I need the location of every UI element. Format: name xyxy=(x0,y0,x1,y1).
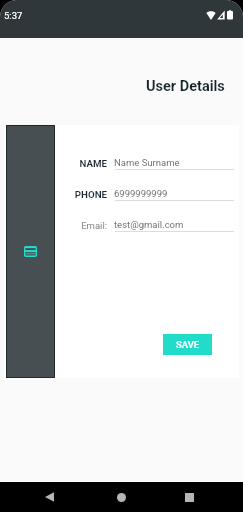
staticText: Name Surname xyxy=(114,157,180,168)
staticText: User Details xyxy=(146,78,225,95)
button[interactable]: Recent apps xyxy=(169,482,209,512)
staticText: 5:37 xyxy=(4,10,23,21)
staticText: PHONE xyxy=(47,189,107,200)
staticText: test@gmail.com xyxy=(114,219,184,230)
button[interactable]: Home xyxy=(101,482,142,512)
staticText: 6999999999 xyxy=(114,188,168,199)
button[interactable]: Payment cards xyxy=(7,126,54,377)
staticText: SAVE xyxy=(176,339,200,350)
button[interactable]: SAVE xyxy=(163,334,212,355)
button[interactable]: Back xyxy=(29,482,69,512)
staticText: Email: xyxy=(47,220,107,231)
staticText: NAME xyxy=(47,158,107,169)
